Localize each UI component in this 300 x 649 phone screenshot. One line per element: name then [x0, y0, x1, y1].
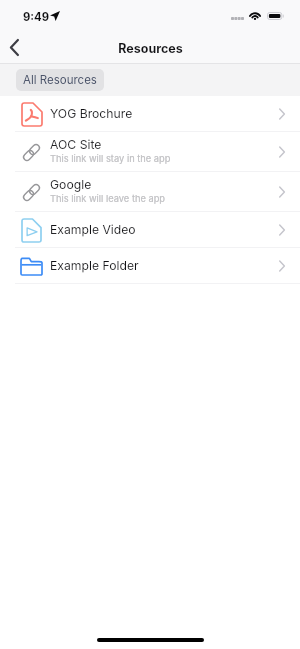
button[interactable]: Back [0, 31, 29, 63]
staticText: Google [50, 177, 92, 192]
staticText: All Resources [23, 73, 97, 87]
button[interactable]: Google [0, 172, 300, 211]
button[interactable]: Example Folder [0, 248, 300, 283]
staticText: Example Folder [50, 258, 139, 273]
staticText: YOG Brochure [50, 106, 133, 121]
button[interactable]: All Resources [16, 69, 104, 91]
button[interactable]: YOG Brochure [0, 96, 300, 131]
staticText: Example Video [50, 222, 136, 237]
button[interactable]: Example Video [0, 212, 300, 247]
staticText: AOC Site [50, 137, 102, 152]
staticText: Resources [118, 41, 183, 56]
button[interactable]: AOC Site [0, 132, 300, 171]
staticText: This link will leave the app [50, 193, 166, 204]
staticText: This link will stay in the app [50, 153, 171, 164]
staticText: 9:49 [23, 10, 50, 24]
